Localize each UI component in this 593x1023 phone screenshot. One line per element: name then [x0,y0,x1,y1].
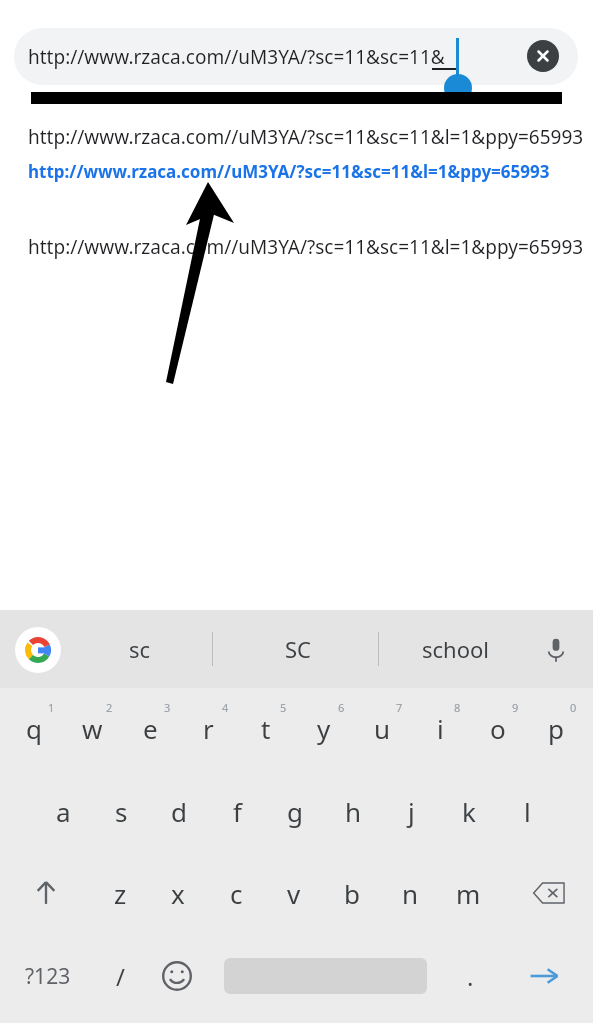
staticText: s [115,794,128,829]
button[interactable]: SC [230,620,365,678]
staticText: 4 [222,700,229,715]
staticText: 2 [106,700,113,715]
button[interactable]: p [530,704,582,752]
staticText: 9 [512,700,519,715]
button[interactable]: Google search [15,627,61,673]
staticText: p [548,711,564,746]
staticText: school [422,634,489,664]
button[interactable]: / [94,952,146,1000]
button[interactable]: Go [520,952,568,1000]
button[interactable]: http://www.rzaca.com//uM3YA/?sc=11&sc=11… [0,230,593,264]
staticText: http://www.rzaca.com//uM3YA/?sc=11&sc=11… [28,124,584,150]
staticText: w [82,711,103,746]
staticText: 0 [570,700,577,715]
button[interactable]: f [211,787,263,835]
button[interactable]: Backspace [520,869,578,917]
staticText: SC [285,634,311,664]
button[interactable]: ?123 [10,952,86,1000]
button[interactable]: sc [75,620,205,678]
button[interactable]: k [443,787,495,835]
staticText: y [317,711,331,746]
button[interactable]: m [442,869,494,917]
staticText: / [116,960,125,993]
button[interactable]: http://www.rzaca.com//uM3YA/?sc=11&sc=11… [0,155,593,187]
button[interactable]: w [66,704,118,752]
staticText: i [437,711,444,746]
button[interactable]: Emoji [153,952,201,1000]
button[interactable]: u [356,704,408,752]
button[interactable]: Clear text [527,40,559,72]
staticText: t [261,711,271,746]
staticText: l [524,794,531,829]
button[interactable]: i [414,704,466,752]
staticText: d [171,794,187,829]
button[interactable]: v [268,869,320,917]
staticText: x [171,876,185,911]
staticText: 8 [454,700,461,715]
staticText: . [467,960,474,993]
staticText: 1 [48,700,55,715]
staticText: q [26,711,42,746]
staticText: ?123 [25,962,71,991]
button[interactable] [14,28,578,85]
staticText: http://www.rzaca.com//uM3YA/?sc=11&sc=11… [28,234,584,260]
staticText: n [402,876,419,911]
button[interactable]: x [152,869,204,917]
staticText: v [287,876,301,911]
staticText: 3 [164,700,171,715]
button[interactable]: j [385,787,437,835]
button[interactable]: Shift [18,869,74,917]
button[interactable]: b [326,869,378,917]
staticText: 6 [338,700,345,715]
button[interactable]: q [8,704,60,752]
button[interactable]: h [327,787,379,835]
button[interactable]: school [390,620,520,678]
button[interactable]: s [95,787,147,835]
button[interactable]: g [269,787,321,835]
staticText: http://www.rzaca.com//uM3YA/?sc=11&sc=11… [28,44,445,70]
button[interactable]: http://www.rzaca.com//uM3YA/?sc=11&sc=11… [0,120,593,154]
staticText: k [462,794,476,829]
button[interactable]: e [124,704,176,752]
button[interactable]: o [472,704,524,752]
button[interactable]: z [94,869,146,917]
staticText: r [203,711,214,746]
staticText: z [114,876,127,911]
button[interactable]: . [444,952,496,1000]
staticText: m [456,876,481,911]
button[interactable]: Voice input [533,627,579,673]
staticText: h [345,794,362,829]
button[interactable]: d [153,787,205,835]
button[interactable]: t [240,704,292,752]
staticText: f [233,794,242,829]
button[interactable]: y [298,704,350,752]
staticText: c [230,876,243,911]
staticText: 5 [280,700,287,715]
button[interactable]: l [501,787,553,835]
staticText: a [56,794,71,829]
staticText: o [490,711,506,746]
button[interactable]: n [384,869,436,917]
staticText: http://www.rzaca.com//uM3YA/?sc=11&sc=11… [28,160,550,183]
staticText: b [344,876,360,911]
staticText: e [143,711,158,746]
button[interactable]: c [210,869,262,917]
staticText: sc [129,634,151,664]
button[interactable]: r [182,704,234,752]
staticText: 7 [396,700,403,715]
staticText: j [408,794,415,829]
button[interactable]: a [37,787,89,835]
staticText: g [287,794,303,829]
staticText: u [374,711,391,746]
